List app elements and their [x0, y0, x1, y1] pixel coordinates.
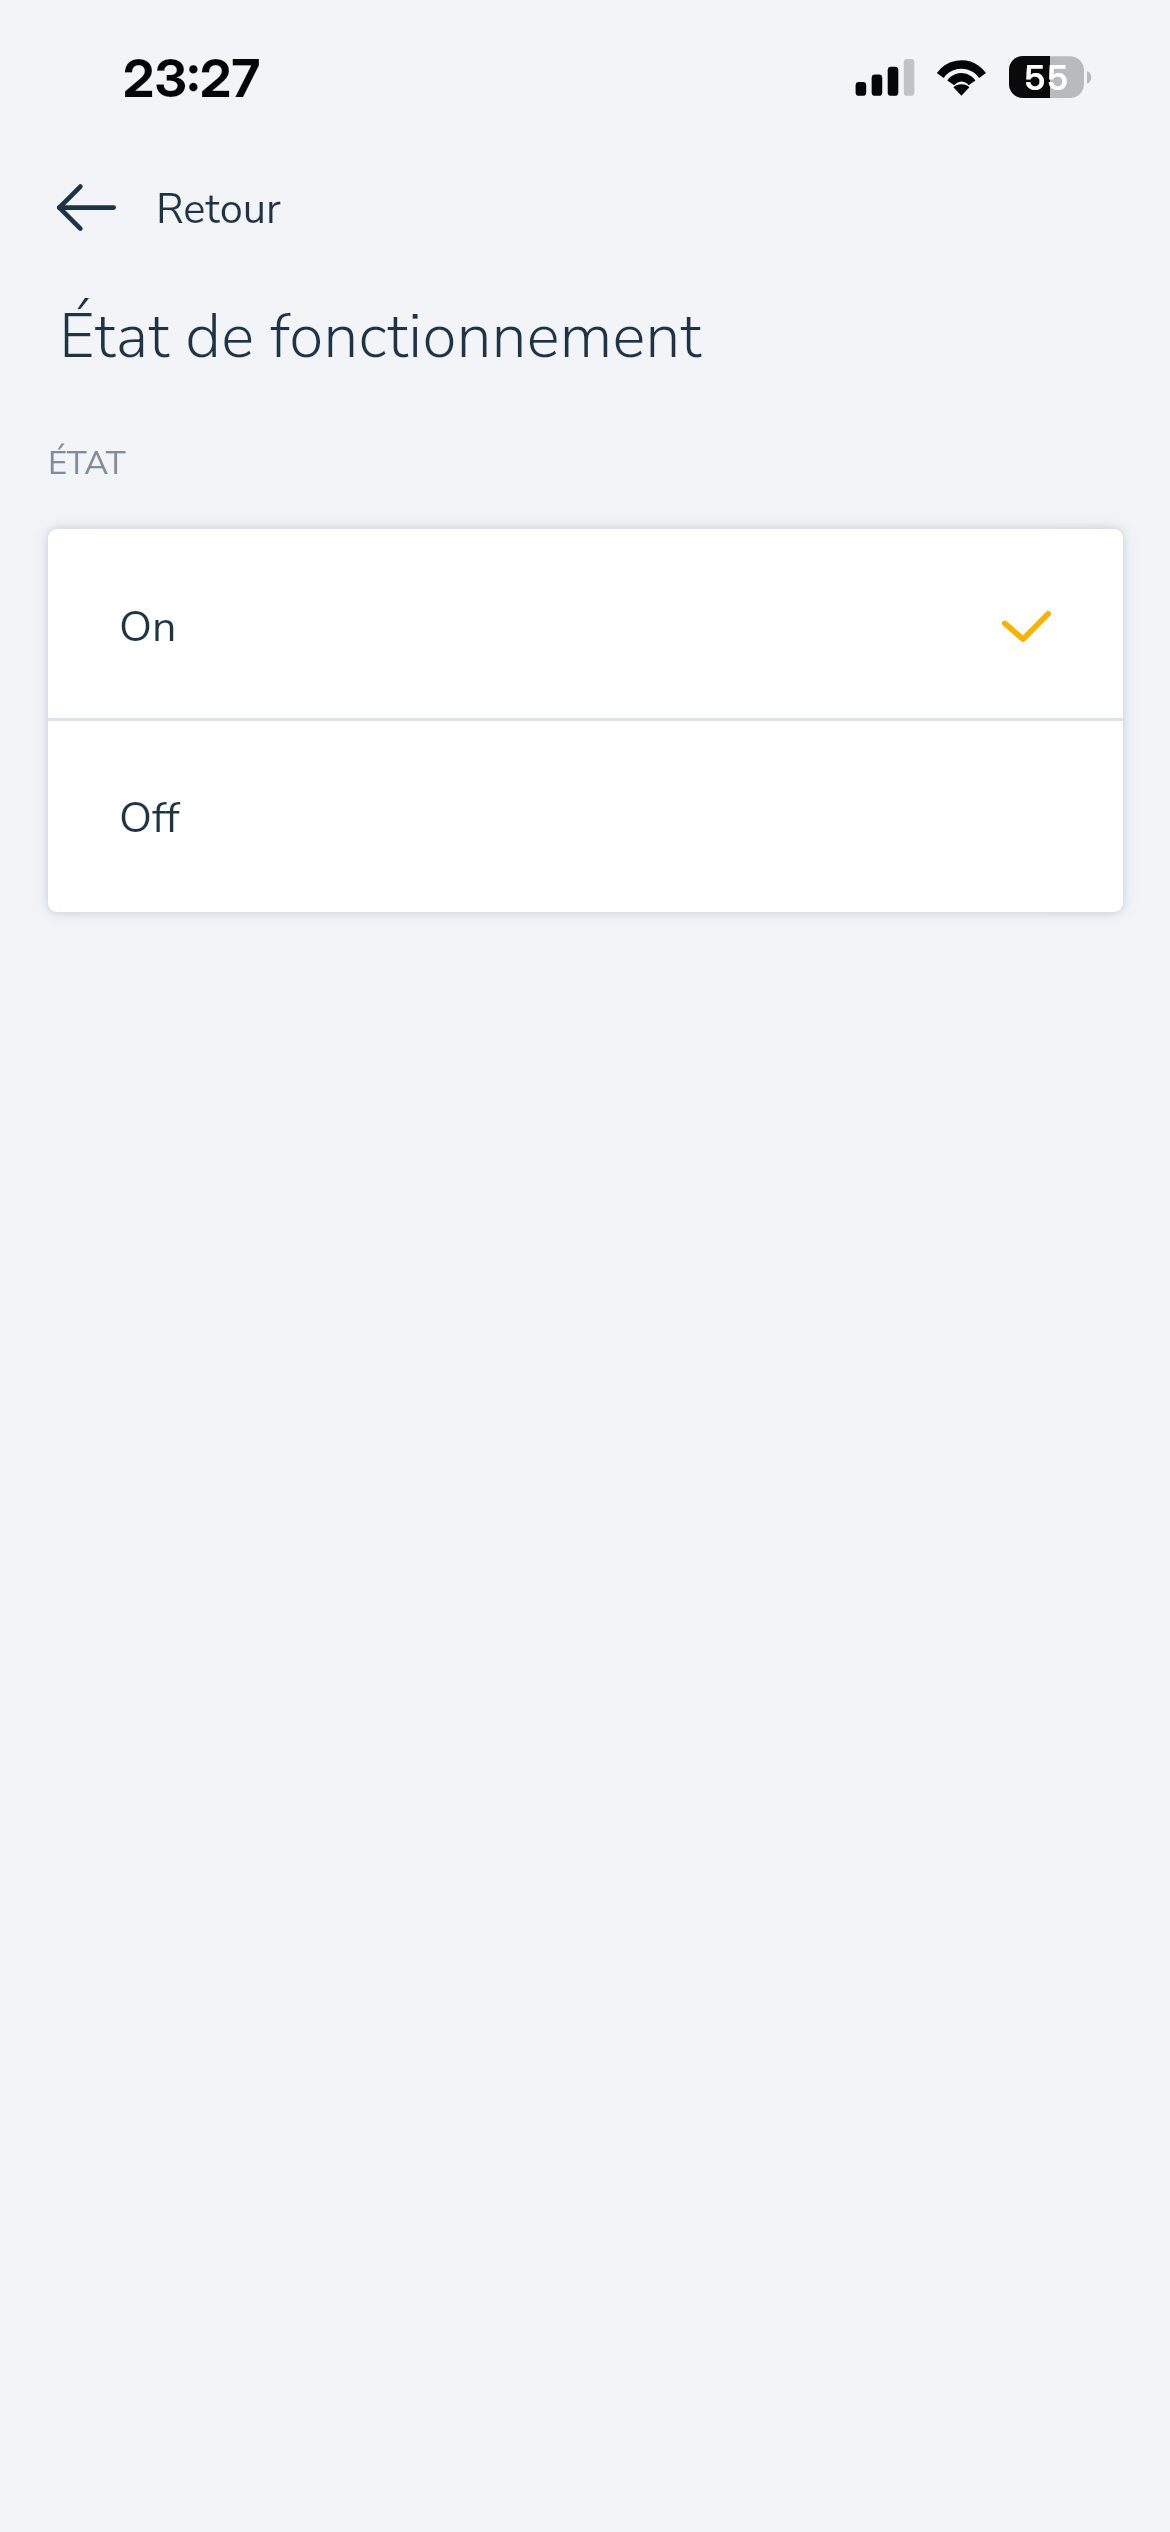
- staticText: On: [119, 598, 177, 657]
- staticText: 23:27: [123, 47, 261, 110]
- staticText: Off: [119, 789, 180, 848]
- staticText: 55: [1025, 57, 1071, 98]
- staticText: Retour: [156, 181, 281, 238]
- staticText: ÉTAT: [48, 441, 126, 486]
- button[interactable]: Off: [48, 721, 1123, 912]
- other: Sélectionné: [1002, 611, 1051, 642]
- staticText: État de fonctionnement: [59, 294, 702, 379]
- button[interactable]: Retour: [0, 160, 340, 254]
- button[interactable]: On: [48, 529, 1123, 718]
